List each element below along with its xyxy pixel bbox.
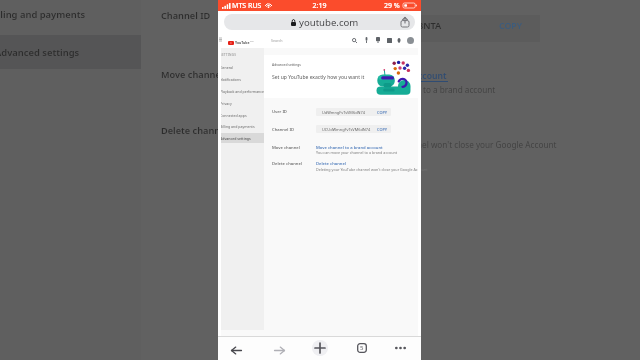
button[interactable]: Tabs [354,340,370,356]
button[interactable]: General [218,62,264,72]
staticText: MTS RUS [232,1,262,11]
button[interactable]: Privacy [218,98,264,108]
staticText: Move channel to a brand account [316,145,383,151]
button[interactable]: COPY [377,127,388,132]
staticText: UCUdWmngFvTsVM6dN74 [322,127,371,132]
button[interactable]: Notifications [395,36,403,44]
button[interactable]: Delete channel [316,161,346,167]
button[interactable]: COPY [377,110,388,115]
staticText: Billing and payments [220,124,255,129]
staticText: Playback and performance [220,89,264,94]
staticText: You can move your channel to a brand acc… [316,150,398,155]
staticText: Privacy [220,101,232,106]
staticText: Connected apps [220,113,247,118]
button[interactable]: Back [226,340,246,360]
staticText: Delete channel [272,161,302,167]
staticText: illing and payments [0,8,86,21]
staticText: youtube.com [299,16,359,29]
button[interactable]: Connected apps [218,110,264,120]
staticText: 8NTA [418,19,442,32]
button[interactable]: Billing and payments [218,121,264,131]
button[interactable]: Advanced settings [218,133,264,143]
staticText: 29 % [384,1,400,11]
staticText: YouTube [235,40,250,45]
button[interactable]: Account [407,37,414,44]
button[interactable]: More [392,340,408,356]
staticText: to a brand account [423,84,496,95]
button[interactable]: Move channel to a brand account [316,145,383,151]
staticText: TM [250,39,254,42]
button[interactable]: Playback and performance [218,86,264,96]
staticText: Advanced settings [272,62,301,66]
staticText: Advanced settings [220,136,251,141]
staticText: UdWmngFvTsVM6dN74 [322,110,365,115]
button[interactable]: Forward [269,340,289,360]
button[interactable]: YouTube [228,40,254,45]
staticText: ccount [418,70,447,82]
staticText: Set up YouTube exactly how you want it [272,74,365,81]
staticText: Notifications [220,77,241,82]
staticText: nel won't close your Google Account [417,139,557,150]
button[interactable]: Create [374,36,382,44]
staticText: Delete chann [161,124,221,137]
button[interactable]: Apps [385,36,393,44]
staticText: Search [271,38,283,43]
button[interactable]: Notifications [218,74,264,84]
staticText: Move channe [161,68,221,81]
button[interactable]: Search [350,36,358,44]
button[interactable]: New tab [312,340,328,356]
staticText: Channel ID [161,9,211,22]
staticText: Deleting your YouTube channel won't clos… [316,167,428,172]
staticText: Channel ID [272,127,295,133]
staticText: COPY [377,127,388,132]
staticText: Advanced settings [0,46,80,59]
button[interactable]: Share [397,14,412,30]
button[interactable]: Menu [218,36,223,43]
staticText: Delete channel [316,161,346,167]
staticText: 2:19 [218,1,421,11]
staticText: Move channel [272,145,300,151]
staticText: SETTINGS [220,53,237,57]
staticText: User ID [272,109,287,115]
staticText: COPY [499,20,523,32]
button[interactable]: youtube.com [224,14,415,30]
button[interactable]: Microphone [362,36,370,44]
staticText: General [220,65,233,70]
staticText: 5 [360,344,364,352]
staticText: COPY [377,110,388,115]
